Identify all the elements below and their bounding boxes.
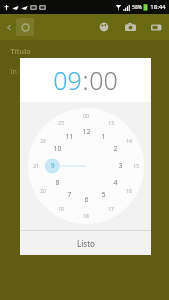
staticText: 7 <box>67 190 72 200</box>
staticText: Listo <box>77 238 95 249</box>
staticText: 5 <box>101 190 106 200</box>
button[interactable]: Palette <box>95 18 113 36</box>
staticText: 14 <box>126 138 132 145</box>
button[interactable]: Video <box>147 18 165 36</box>
staticText: 09 <box>53 63 82 97</box>
staticText: 1 <box>101 132 106 142</box>
staticText: 18:44 <box>150 3 166 11</box>
button[interactable]: Back <box>2 20 16 34</box>
staticText: 22 <box>40 138 46 145</box>
staticText: 20 <box>40 188 46 195</box>
staticText: 10 <box>53 144 62 154</box>
staticText: Título <box>10 47 31 57</box>
staticText: 23 <box>58 120 64 127</box>
staticText: 00 <box>89 63 118 97</box>
staticText: 21 <box>33 163 39 170</box>
staticText: 6 <box>84 195 89 205</box>
staticText: 12 <box>82 127 91 137</box>
button[interactable]: Listo <box>20 231 151 255</box>
staticText: 9 <box>50 161 55 171</box>
staticText: 17 <box>108 206 114 213</box>
staticText: In <box>10 67 17 77</box>
staticText: 18 <box>83 213 89 220</box>
staticText: : <box>82 63 89 97</box>
button[interactable]: Camera <box>121 18 139 36</box>
staticText: 15 <box>133 163 139 170</box>
staticText: 2 <box>113 144 118 154</box>
staticText: 4 <box>113 178 118 188</box>
staticText: 8 <box>55 178 60 188</box>
staticText: 11 <box>65 132 74 142</box>
button[interactable]: App icon <box>16 18 34 36</box>
staticText: 3 <box>118 161 123 171</box>
button[interactable]: 09 <box>53 63 82 97</box>
staticText: 58% <box>132 4 142 11</box>
staticText: 19 <box>58 206 64 213</box>
button[interactable]: 00 <box>89 63 118 97</box>
staticText: 00 <box>83 113 89 120</box>
staticText: 16 <box>126 188 132 195</box>
staticText: 13 <box>108 120 114 127</box>
